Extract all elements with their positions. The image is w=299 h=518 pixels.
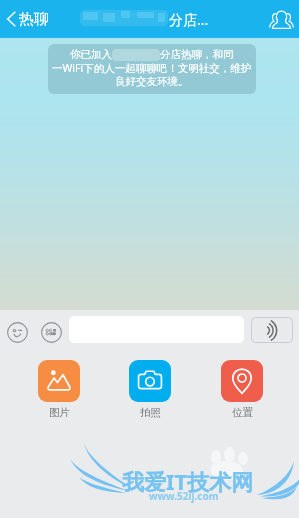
staticText: 热聊 — [19, 10, 49, 29]
staticText: 良好交友环境。 — [115, 75, 189, 88]
staticText: 你已加入 — [70, 48, 112, 61]
button[interactable]: 位置 — [221, 360, 263, 419]
staticText: 一WiFi下的人一起聊聊吧！文明社交，维护 — [52, 61, 252, 75]
staticText: 拍照 — [140, 406, 161, 419]
button[interactable]: Emoji — [2, 317, 32, 347]
staticText: 图片 — [49, 406, 70, 419]
staticText: 我爱IT技术网 — [122, 466, 254, 496]
button[interactable]: 图片 — [38, 360, 80, 419]
staticText: 位置 — [232, 406, 253, 419]
button[interactable]: Voice message — [251, 317, 293, 343]
button[interactable]: 热聊 — [0, 0, 53, 38]
button[interactable]: Keyboard — [36, 317, 66, 347]
button[interactable]: Members — [264, 2, 298, 36]
staticText: 分店热聊，和同 — [160, 48, 234, 61]
button[interactable]: 拍照 — [129, 360, 171, 419]
staticText: www.52ij.com — [149, 489, 219, 503]
staticText: 分店... — [169, 10, 209, 29]
